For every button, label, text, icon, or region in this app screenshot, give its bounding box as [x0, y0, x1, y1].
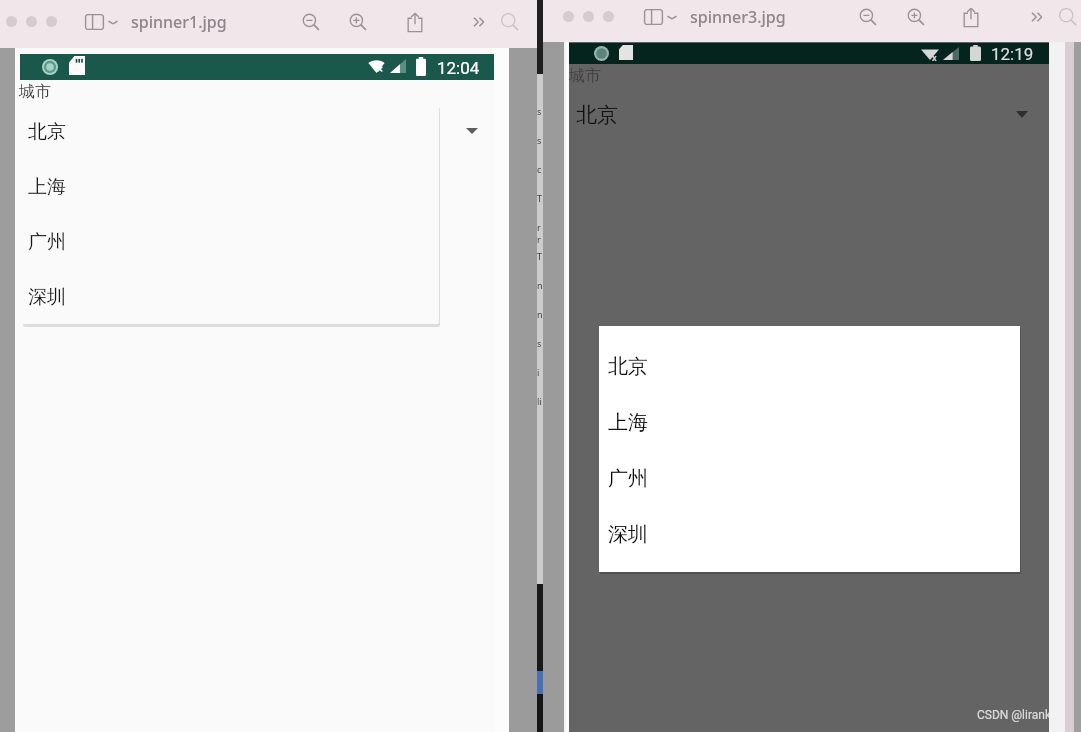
staticText: s [537, 105, 542, 117]
staticText: 北京 [608, 354, 648, 379]
staticText: rr [537, 221, 543, 245]
button[interactable]: Zoom out [300, 11, 322, 33]
button[interactable]: Zoom in [905, 6, 927, 28]
staticText: 城市 [569, 66, 601, 86]
staticText: s [537, 134, 542, 146]
staticText: x [932, 52, 937, 63]
button[interactable]: Sidebar [83, 11, 105, 33]
staticText: T [537, 192, 543, 204]
staticText: 12:19 [991, 44, 1034, 64]
button[interactable]: 北京 [22, 104, 439, 159]
button[interactable]: Share [960, 6, 982, 28]
staticText: s [537, 337, 542, 349]
staticText: n [537, 308, 543, 320]
button[interactable]: Close [6, 16, 17, 27]
button[interactable]: Zoom [603, 11, 614, 22]
button[interactable]: Search [499, 11, 521, 33]
button[interactable]: 深圳 [22, 269, 439, 324]
button[interactable]: Open spinner [456, 120, 488, 142]
button[interactable]: More toolbar items [1027, 6, 1049, 28]
button[interactable]: 上海 [22, 159, 439, 214]
staticText: spinner1.jpg [131, 11, 227, 33]
button[interactable]: Zoom [46, 16, 57, 27]
staticText: 北京 [28, 120, 66, 144]
button[interactable]: Sidebar options [107, 16, 119, 28]
button[interactable]: 北京 [569, 92, 1049, 137]
staticText: 深圳 [608, 522, 648, 547]
button[interactable]: 广州 [22, 214, 439, 269]
button[interactable]: Zoom out [857, 6, 879, 28]
button[interactable]: Zoom in [347, 11, 369, 33]
button[interactable]: Search [1057, 6, 1079, 28]
button[interactable]: 上海 [599, 394, 1020, 450]
button[interactable]: Sidebar options [666, 11, 678, 23]
staticText: 上海 [608, 410, 648, 435]
staticText: 上海 [28, 175, 66, 199]
button[interactable]: Share [404, 11, 426, 33]
button[interactable]: 北京 [599, 338, 1020, 394]
staticText: 北京 [576, 102, 618, 128]
staticText: CSDN @liranke [977, 708, 1058, 722]
staticText: li [537, 395, 542, 407]
staticText: 深圳 [28, 285, 66, 309]
button[interactable]: Minimize [26, 16, 37, 27]
staticText: 12:04 [437, 58, 480, 78]
staticText: 城市 [19, 82, 51, 102]
button[interactable]: More toolbar items [469, 11, 491, 33]
button[interactable]: Sidebar [642, 6, 664, 28]
staticText: 广州 [608, 466, 648, 491]
button[interactable]: 深圳 [599, 506, 1020, 562]
staticText: spinner3.jpg [690, 6, 786, 28]
button[interactable]: Minimize [583, 11, 594, 22]
staticText: c [537, 163, 542, 175]
staticText: i [537, 366, 540, 378]
staticText: T [537, 250, 543, 262]
button[interactable]: 广州 [599, 450, 1020, 506]
staticText: n [537, 279, 543, 291]
staticText: 广州 [28, 230, 66, 254]
button[interactable]: Close [563, 11, 574, 22]
